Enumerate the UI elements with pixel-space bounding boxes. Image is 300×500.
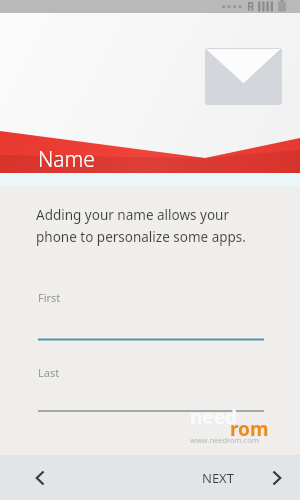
- staticText: NEXT: [202, 469, 234, 487]
- button[interactable]: Back: [18, 456, 62, 500]
- staticText: www.needrom.com: [190, 435, 259, 445]
- staticText: need: [190, 404, 238, 430]
- button[interactable]: NEXT: [198, 456, 290, 500]
- staticText: Adding your name allows your phone to pe…: [36, 206, 276, 246]
- staticText: Last: [38, 365, 60, 380]
- button[interactable]: First: [36, 286, 264, 342]
- staticText: Name: [38, 145, 95, 174]
- staticText: rom: [230, 416, 269, 442]
- staticText: First: [38, 290, 61, 305]
- button[interactable]: Last: [36, 361, 264, 413]
